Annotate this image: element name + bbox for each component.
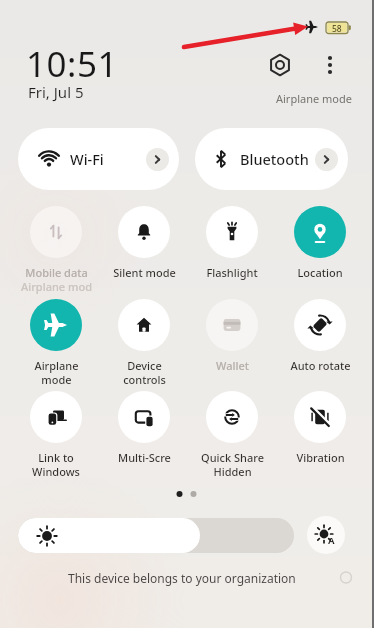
staticText: Airplane mode	[276, 91, 352, 106]
staticText: Airplane	[34, 358, 79, 373]
button[interactable]	[264, 49, 296, 81]
staticText: Hidden	[213, 464, 252, 479]
staticText: 58	[332, 23, 342, 35]
staticText: Location	[297, 265, 343, 280]
button[interactable]	[146, 148, 169, 171]
button[interactable]	[294, 206, 346, 258]
staticText: Wallet	[216, 358, 249, 373]
button[interactable]	[30, 391, 82, 443]
button[interactable]	[118, 391, 170, 443]
button[interactable]	[118, 299, 170, 351]
staticText: Device	[127, 358, 162, 373]
button[interactable]	[316, 49, 344, 81]
button[interactable]: A	[307, 516, 345, 554]
staticText: 10:51	[26, 40, 118, 88]
staticText: mode	[41, 372, 72, 387]
staticText: Flashlight	[206, 265, 258, 280]
staticText: Bluetooth	[240, 149, 309, 169]
staticText: Fri, Jul 5	[28, 82, 84, 102]
staticText: Vibration	[296, 450, 345, 465]
button[interactable]	[315, 148, 338, 171]
button[interactable]	[294, 299, 346, 351]
button[interactable]	[195, 128, 348, 190]
staticText: Multi-Scre	[118, 450, 171, 465]
button[interactable]	[30, 206, 82, 258]
button[interactable]	[118, 206, 170, 258]
button[interactable]	[18, 518, 294, 553]
staticText: A	[328, 534, 335, 547]
staticText: Silent mode	[113, 265, 176, 280]
button[interactable]	[206, 299, 258, 351]
staticText: Wi-Fi	[70, 149, 104, 169]
button[interactable]	[206, 391, 258, 443]
staticText: Windows	[32, 464, 80, 479]
button[interactable]	[294, 391, 346, 443]
staticText: Link to	[38, 450, 74, 465]
staticText: controls	[123, 372, 166, 387]
staticText: Auto rotate	[290, 358, 351, 373]
button[interactable]	[30, 299, 82, 351]
staticText: Airplane mod	[21, 279, 92, 294]
staticText: Mobile data	[25, 265, 88, 280]
button[interactable]	[18, 128, 179, 190]
button[interactable]	[206, 206, 258, 258]
staticText: This device belongs to your organization	[68, 570, 296, 586]
staticText: Quick Share	[201, 450, 264, 465]
